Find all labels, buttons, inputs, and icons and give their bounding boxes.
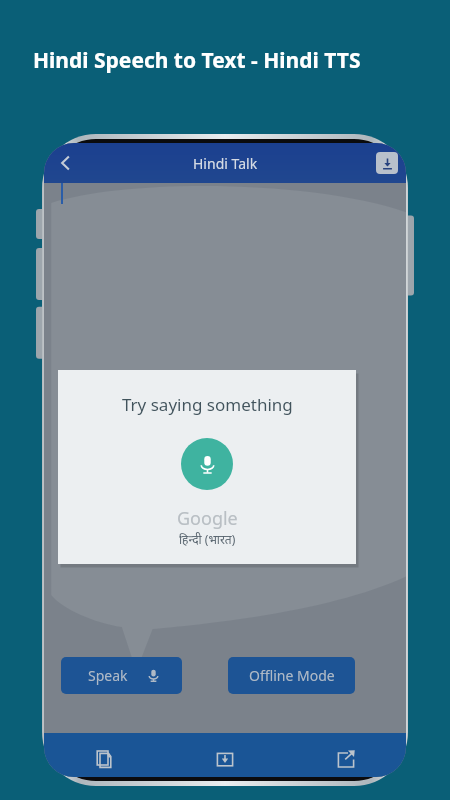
button[interactable]: Back [50, 147, 82, 179]
button[interactable]: Save [203, 737, 247, 777]
staticText: Hindi Speech to Text - Hindi TTS [33, 46, 361, 75]
staticText: हिन्दी (भारत) [179, 531, 236, 547]
staticText: Speak [88, 666, 128, 685]
button[interactable]: Speak [61, 657, 182, 694]
staticText: Offline Mode [249, 666, 335, 685]
button[interactable]: Save [376, 152, 398, 174]
button[interactable]: Share [324, 737, 368, 777]
staticText: Hindi Talk [193, 154, 258, 173]
button[interactable]: Offline Mode [228, 657, 355, 694]
staticText: Google [177, 506, 238, 531]
button[interactable]: Microphone [181, 438, 233, 490]
staticText: Try saying something [122, 393, 293, 416]
button[interactable]: Copy [82, 737, 126, 777]
